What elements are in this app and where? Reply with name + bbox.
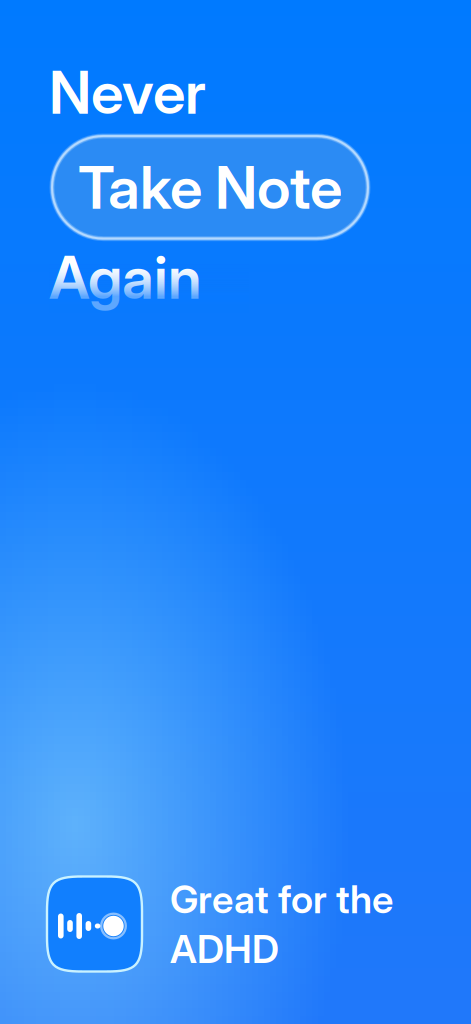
staticText: Take Note [78,152,342,223]
staticText: Great for the [170,876,393,922]
staticText: Never [49,57,206,128]
staticText: ADHD [170,925,279,972]
button[interactable]: Take Note [52,136,368,239]
staticText: Again [49,242,202,313]
